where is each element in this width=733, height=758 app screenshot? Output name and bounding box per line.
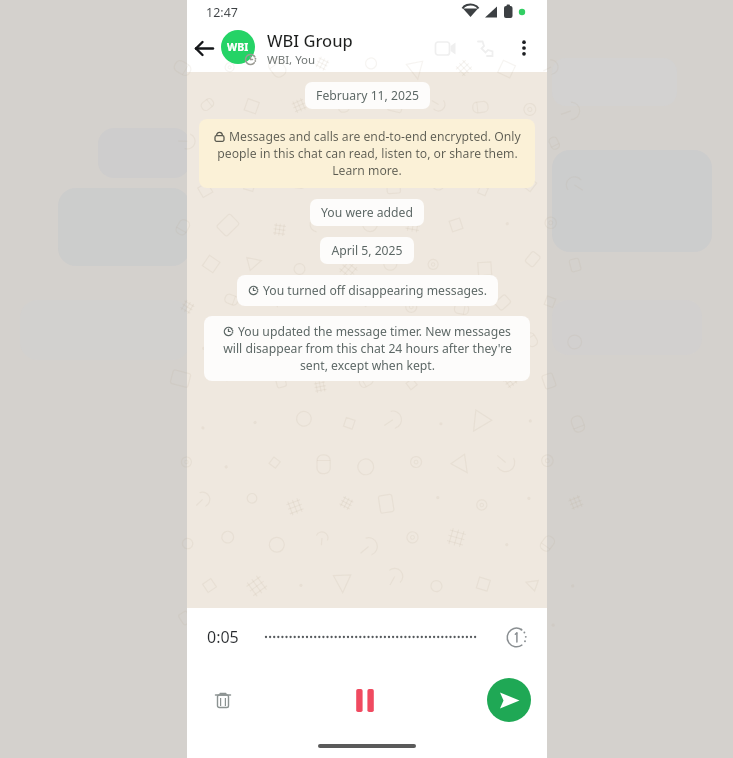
- button[interactable]: Send: [487, 678, 531, 722]
- button[interactable]: Voice call: [465, 28, 505, 68]
- staticText: April 5, 2025: [331, 242, 403, 259]
- button[interactable]: You turned off disappearing messages.: [237, 275, 498, 306]
- button[interactable]: WBI Group: [267, 29, 425, 68]
- staticText: WBI: [227, 40, 249, 54]
- button[interactable]: View once: [501, 622, 531, 652]
- staticText: 0:05: [207, 626, 239, 648]
- button[interactable]: Video call: [425, 28, 465, 68]
- button[interactable]: Delete recording: [203, 680, 243, 720]
- staticText: You were added: [321, 204, 413, 221]
- button[interactable]: You updated the message timer. New messa…: [204, 316, 530, 381]
- staticText: WBI Group: [267, 29, 353, 51]
- staticText: sent, except when kept.: [300, 357, 435, 374]
- button[interactable]: Messages and calls are end-to-end encryp…: [199, 119, 535, 188]
- staticText: You updated the message timer. New messa…: [238, 323, 511, 340]
- staticText: WBI, You: [267, 52, 316, 68]
- staticText: Messages and calls are end-to-end encryp…: [229, 128, 521, 145]
- staticText: people in this chat can read, listen to,…: [217, 145, 518, 162]
- button[interactable]: Pause recording: [339, 674, 391, 726]
- button[interactable]: More options: [505, 29, 543, 67]
- staticText: February 11, 2025: [316, 87, 419, 104]
- staticText: will disappear from this chat 24 hours a…: [223, 340, 512, 357]
- staticText: 12:47: [206, 4, 238, 21]
- staticText: Learn more.: [332, 162, 402, 179]
- button[interactable]: Back: [187, 31, 221, 65]
- staticText: You turned off disappearing messages.: [263, 282, 487, 299]
